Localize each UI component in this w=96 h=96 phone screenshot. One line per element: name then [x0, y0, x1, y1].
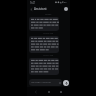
- button[interactable]: Home: [46, 89, 52, 95]
- staticText: Message Assistant: [31, 81, 51, 84]
- staticText: Assistant: [34, 7, 47, 11]
- staticText: ● ● ▲ ▮ 82: [55, 1, 67, 4]
- button[interactable]: Profile: [64, 7, 68, 11]
- button[interactable]: [29, 36, 59, 53]
- button[interactable]: Back: [29, 7, 34, 12]
- button[interactable]: [29, 58, 59, 75]
- staticText: Today: [45, 13, 52, 16]
- staticText: 10:24 AM: [43, 32, 54, 35]
- button[interactable]: Recents: [58, 89, 64, 95]
- staticText: 9:41: [30, 1, 36, 5]
- button[interactable]: Message Assistant: [29, 79, 62, 86]
- staticText: 10:31 AM: [43, 54, 54, 57]
- button[interactable]: Back: [33, 89, 39, 95]
- button[interactable]: [29, 17, 59, 31]
- button[interactable]: Attach: [58, 81, 61, 84]
- button[interactable]: Send: [63, 80, 69, 86]
